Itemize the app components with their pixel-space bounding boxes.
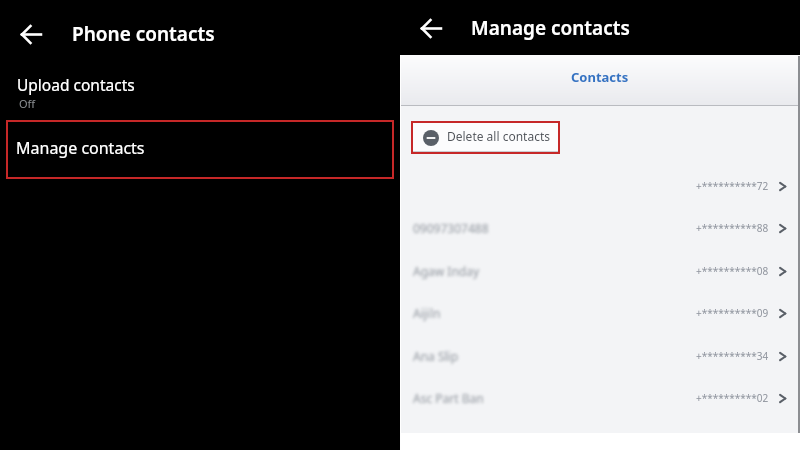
button[interactable]: Contacts [400, 55, 800, 105]
staticText: Delete all contacts [447, 128, 550, 144]
button[interactable]: Navigate up [12, 15, 50, 53]
button[interactable]: 09097307488 [400, 206, 800, 249]
staticText: Asc Part Ban [413, 390, 484, 406]
button[interactable]: Ana Slip [400, 334, 800, 377]
staticText: Manage contacts [471, 15, 630, 41]
button[interactable]: +**********72 [400, 164, 800, 207]
staticText: Ana Slip [413, 348, 459, 364]
staticText: +**********08 [696, 264, 769, 278]
button[interactable]: Aijiln [400, 291, 800, 334]
button[interactable]: Delete all contacts [411, 121, 560, 154]
button[interactable]: Navigate up [412, 9, 450, 47]
staticText: Upload contacts [17, 74, 135, 95]
staticText: +**********34 [696, 349, 769, 363]
button[interactable]: Upload contacts [0, 67, 400, 119]
staticText: +**********02 [696, 391, 769, 405]
staticText: Phone contacts [72, 21, 215, 47]
staticText: +**********72 [696, 179, 769, 193]
staticText: Manage contacts [16, 137, 145, 159]
staticText: Contacts [571, 68, 629, 86]
staticText: Off [19, 96, 36, 111]
staticText: Agaw Inday [413, 263, 480, 279]
button[interactable]: Manage contacts [6, 120, 394, 179]
staticText: +**********88 [696, 221, 769, 235]
button[interactable]: Agaw Inday [400, 249, 800, 292]
staticText: +**********09 [696, 306, 769, 320]
staticText: 09097307488 [413, 220, 489, 236]
button[interactable]: Asc Part Ban [400, 376, 800, 419]
staticText: Aijiln [413, 305, 441, 321]
